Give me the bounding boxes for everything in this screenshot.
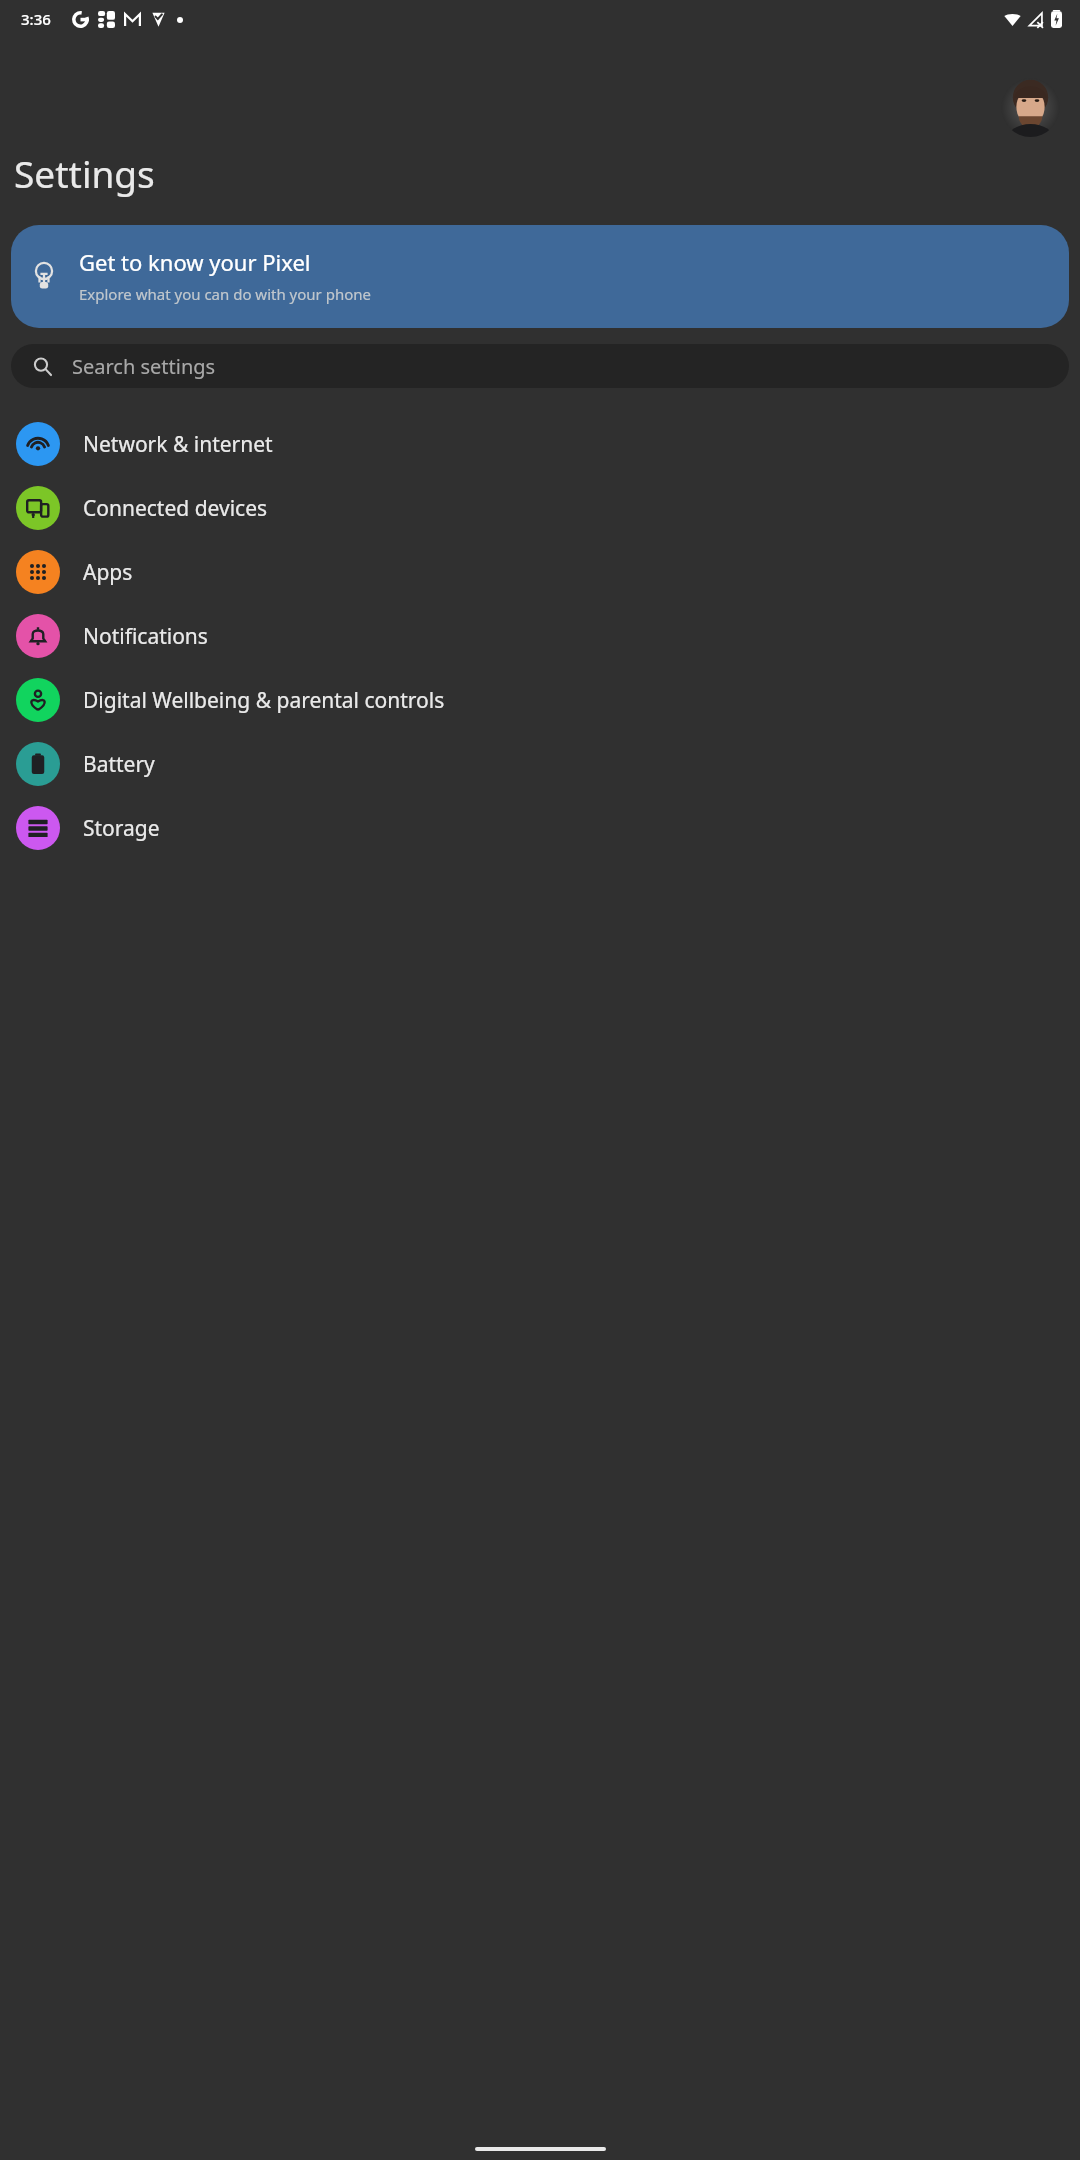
button[interactable]: Notifications — [0, 604, 1080, 668]
staticText: Network & internet — [83, 430, 273, 459]
button[interactable]: Battery — [0, 732, 1080, 796]
staticText: Apps — [83, 558, 133, 587]
button[interactable]: Account — [1001, 78, 1060, 137]
staticText: Search settings — [72, 353, 216, 380]
staticText: Settings — [14, 148, 155, 198]
button[interactable]: Apps — [0, 540, 1080, 604]
staticText: Battery — [83, 750, 155, 779]
staticText: Notifications — [83, 622, 208, 651]
staticText: Digital Wellbeing & parental controls — [83, 686, 445, 715]
staticText: Get to know your Pixel — [79, 247, 311, 277]
staticText: Explore what you can do with your phone — [79, 284, 372, 304]
button[interactable]: Get to know your Pixel — [11, 225, 1069, 328]
staticText: 3:36 — [21, 9, 51, 29]
button[interactable]: Connected devices — [0, 476, 1080, 540]
staticText: Storage — [83, 814, 160, 843]
button[interactable]: Digital Wellbeing & parental controls — [0, 668, 1080, 732]
button[interactable]: Network & internet — [0, 412, 1080, 476]
staticText: Connected devices — [83, 494, 268, 523]
button[interactable]: Search settings — [11, 344, 1069, 388]
button[interactable]: Storage — [0, 796, 1080, 860]
